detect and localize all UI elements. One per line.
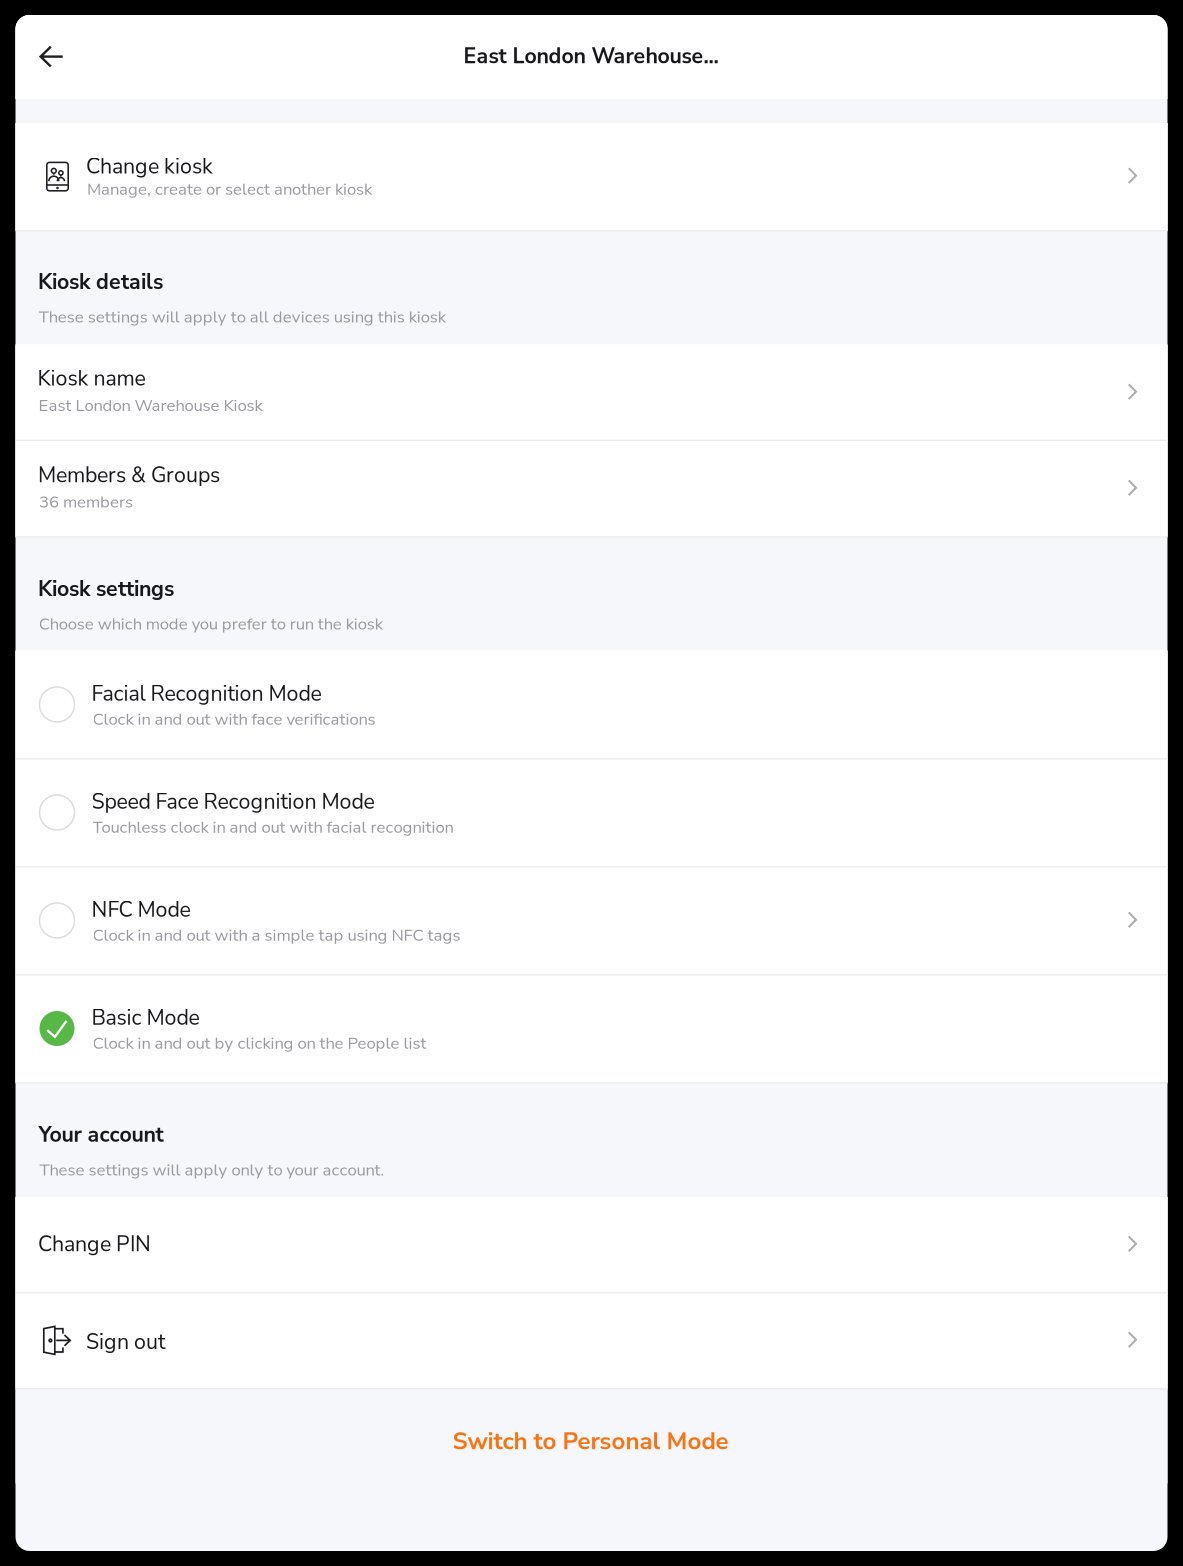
staticText: Facial Recognition Mode: [91, 679, 321, 708]
staticText: Change PIN: [38, 1230, 151, 1259]
button[interactable]: NFC Mode: [15, 866, 1167, 974]
staticText: Kiosk details: [38, 267, 163, 297]
staticText: Touchless clock in and out with facial r…: [92, 816, 453, 839]
staticText: Kiosk name: [37, 364, 145, 393]
staticText: Sign out: [86, 1327, 165, 1357]
staticText: Members & Groups: [38, 461, 220, 490]
staticText: Your account: [38, 1120, 163, 1149]
button[interactable]: Change PIN: [15, 1197, 1167, 1292]
button[interactable]: Sign out: [15, 1292, 1167, 1388]
staticText: NFC Mode: [91, 895, 190, 924]
button[interactable]: Members & Groups: [15, 440, 1167, 536]
staticText: Kiosk settings: [38, 574, 174, 604]
staticText: Change kiosk: [86, 152, 213, 181]
staticText: Clock in and out with face verifications: [92, 708, 375, 731]
staticText: Switch to Personal Mode: [452, 1425, 728, 1458]
button[interactable]: Kiosk name: [15, 344, 1167, 440]
button[interactable]: Change kiosk: [15, 123, 1167, 230]
staticText: Clock in and out by clicking on the Peop…: [92, 1032, 426, 1055]
staticText: East London Warehouse...: [463, 42, 718, 71]
staticText: These settings will apply only to your a…: [39, 1159, 384, 1181]
staticText: Speed Face Recognition Mode: [91, 787, 374, 816]
button[interactable]: Facial Recognition Mode: [15, 650, 1167, 758]
staticText: Basic Mode: [91, 1003, 199, 1032]
button[interactable]: Back: [15, 15, 93, 99]
button[interactable]: Speed Face Recognition Mode: [15, 758, 1167, 866]
staticText: Manage, create or select another kiosk: [87, 178, 372, 201]
staticText: 36 members: [39, 491, 133, 513]
staticText: Clock in and out with a simple tap using…: [92, 924, 460, 947]
button[interactable]: Switch to Personal Mode: [15, 1388, 1167, 1483]
staticText: Choose which mode you prefer to run the …: [39, 613, 383, 635]
button[interactable]: East London Warehouse...: [15, 15, 335, 71]
staticText: These settings will apply to all devices…: [39, 306, 446, 328]
button[interactable]: Basic Mode: [15, 974, 1167, 1082]
staticText: East London Warehouse Kiosk: [38, 394, 262, 417]
